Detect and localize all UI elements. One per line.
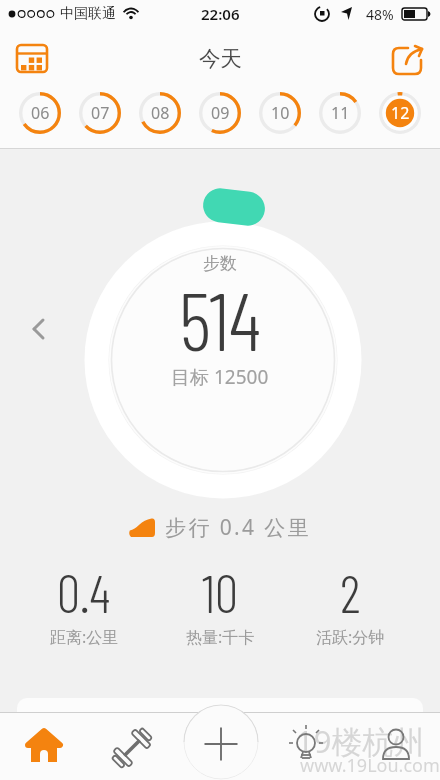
staticText: www.19Lou.com xyxy=(300,753,440,778)
staticText: 2 xyxy=(340,561,361,623)
button[interactable] xyxy=(20,724,68,772)
button[interactable]: 0.4 xyxy=(14,560,154,648)
staticText: 514 xyxy=(179,271,261,367)
staticText: 热量:千卡 xyxy=(186,626,255,648)
button[interactable]: 2 xyxy=(280,560,420,648)
button[interactable] xyxy=(183,704,259,780)
button[interactable] xyxy=(108,724,156,772)
staticText: 09 xyxy=(211,102,230,124)
staticText: 步数 xyxy=(203,253,237,274)
button[interactable] xyxy=(20,312,56,348)
button[interactable] xyxy=(284,722,332,770)
staticText: 步行 0.4 公里 xyxy=(165,513,312,542)
staticText: 48% xyxy=(366,5,394,24)
button[interactable] xyxy=(372,722,420,770)
button[interactable]: 10 xyxy=(150,560,290,648)
button[interactable]: 06 xyxy=(18,91,62,135)
button[interactable]: 12 xyxy=(378,91,422,135)
staticText: 距离:公里 xyxy=(50,626,119,648)
button[interactable] xyxy=(386,40,430,80)
button[interactable] xyxy=(10,40,54,80)
button[interactable]: 10 xyxy=(258,91,302,135)
staticText: 11 xyxy=(331,102,350,124)
staticText: 10 xyxy=(202,561,238,623)
staticText: 活跃:分钟 xyxy=(316,626,385,648)
button[interactable]: 09 xyxy=(198,91,242,135)
staticText: 今天 xyxy=(199,45,242,72)
staticText: 12 xyxy=(391,102,410,124)
staticText: 中国联通 xyxy=(60,5,116,23)
staticText: 06 xyxy=(31,102,50,124)
staticText: 0.4 xyxy=(57,561,111,623)
staticText: 19楼杭州 xyxy=(296,720,425,762)
staticText: 目标 12500 xyxy=(171,364,269,388)
button[interactable]: 11 xyxy=(318,91,362,135)
staticText: 07 xyxy=(91,102,110,124)
staticText: 22:06 xyxy=(201,4,240,24)
button[interactable]: 08 xyxy=(138,91,182,135)
staticText: 08 xyxy=(151,102,170,124)
button[interactable]: 07 xyxy=(78,91,122,135)
staticText: 10 xyxy=(271,102,290,124)
